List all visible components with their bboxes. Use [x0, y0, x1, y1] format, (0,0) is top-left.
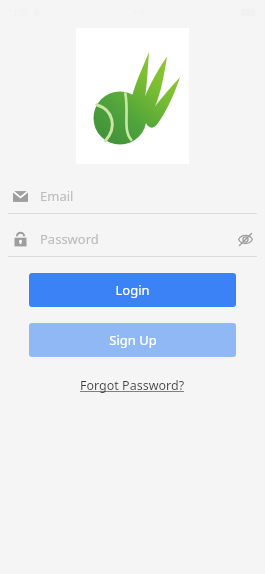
button[interactable]: Toggle password visibility [233, 227, 257, 251]
button[interactable]: Password [0, 222, 265, 256]
button[interactable]: Forgot Password? [74, 374, 191, 397]
staticText: Login [115, 281, 150, 299]
staticText: Sign Up [109, 331, 157, 349]
staticText: Password [40, 230, 99, 248]
button[interactable]: Login [29, 273, 236, 307]
button[interactable]: Sign Up [29, 323, 236, 357]
staticText: Forgot Password? [80, 377, 185, 394]
button[interactable]: Email [0, 179, 265, 213]
staticText: Email [40, 187, 74, 205]
